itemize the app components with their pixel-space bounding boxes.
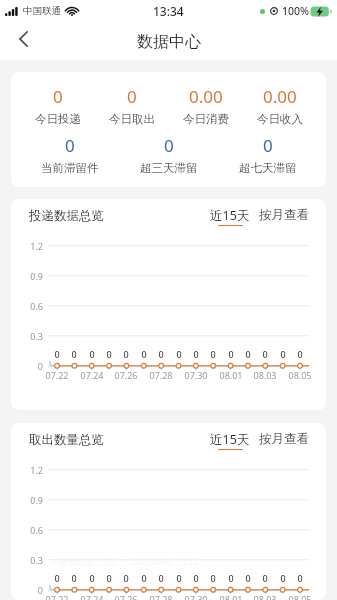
staticText: 0 [221, 572, 241, 584]
staticText: 1.2 [11, 464, 43, 476]
staticText: 0 [82, 572, 102, 584]
button[interactable]: 取出数量总览 [29, 432, 104, 448]
staticText: 0 [273, 348, 293, 360]
button[interactable]: 0 [20, 134, 119, 175]
staticText: 数据中心 [137, 32, 201, 52]
staticText: 0 [64, 572, 84, 584]
staticText: 0.9 [11, 270, 43, 282]
staticText: 0 [47, 572, 67, 584]
staticText: 投递数据总览 [29, 208, 104, 224]
staticText: 0 [203, 572, 223, 584]
button[interactable]: 按月查看 [259, 207, 309, 223]
staticText: 07.26 [112, 369, 140, 381]
staticText: 0 [134, 572, 154, 584]
staticText: 今日取出 [109, 112, 155, 126]
staticText: 按月查看 [259, 431, 309, 447]
staticText: 07.26 [112, 593, 140, 600]
staticText: 0 [263, 134, 273, 157]
button[interactable]: 近15天 [210, 207, 250, 226]
staticText: 1.2 [11, 240, 43, 252]
button[interactable]: 0 [95, 85, 169, 126]
staticText: 07.24 [78, 593, 106, 600]
staticText: 07.30 [182, 593, 210, 600]
staticText: 100% [282, 4, 309, 18]
staticText: 0 [11, 584, 43, 596]
button[interactable]: 0.00 [243, 85, 317, 126]
staticText: 08.05 [286, 369, 314, 381]
staticText: 0 [116, 348, 136, 360]
button[interactable]: 0 [119, 134, 218, 175]
staticText: 07.28 [147, 369, 175, 381]
button[interactable]: Back [9, 22, 37, 60]
staticText: 08.01 [217, 369, 245, 381]
staticText: 07.24 [78, 369, 106, 381]
staticText: 0 [290, 348, 310, 360]
staticText: 0.3 [11, 554, 43, 566]
staticText: 0.6 [11, 300, 43, 312]
staticText: 今日收入 [257, 112, 303, 126]
staticText: 13:34 [153, 3, 184, 19]
staticText: 0 [127, 85, 137, 108]
staticText: 0 [238, 572, 258, 584]
staticText: 08.03 [251, 369, 279, 381]
staticText: 0 [238, 348, 258, 360]
staticText: 08.05 [286, 593, 314, 600]
staticText: 0 [82, 348, 102, 360]
staticText: 取出数量总览 [29, 432, 104, 448]
staticText: 0 [65, 134, 75, 157]
staticText: 0 [164, 134, 174, 157]
staticText: 0 [255, 572, 275, 584]
staticText: 0 [169, 348, 189, 360]
button[interactable]: 0.00 [169, 85, 243, 126]
staticText: 0 [151, 572, 171, 584]
staticText: 08.03 [251, 593, 279, 600]
staticText: 丰巢智能柜 门店 20250805 13:34 [50, 555, 199, 567]
button[interactable]: 近15天 [210, 431, 250, 450]
staticText: 0.6 [11, 524, 43, 536]
staticText: 超七天滞留 [239, 161, 297, 175]
staticText: 中国联通 [23, 5, 61, 17]
staticText: 当前滞留件 [41, 161, 99, 175]
staticText: 07.28 [147, 593, 175, 600]
staticText: 0 [255, 348, 275, 360]
staticText: 0 [186, 348, 206, 360]
staticText: 07.30 [182, 369, 210, 381]
staticText: 今日投递 [35, 112, 81, 126]
button[interactable]: 按月查看 [259, 431, 309, 447]
button[interactable]: 0 [218, 134, 317, 175]
staticText: 0 [203, 348, 223, 360]
button[interactable]: 投递数据总览 [29, 208, 104, 224]
staticText: 0.00 [263, 85, 297, 108]
staticText: 0.00 [189, 85, 223, 108]
staticText: 0 [64, 348, 84, 360]
staticText: 0 [169, 572, 189, 584]
staticText: 0 [134, 348, 154, 360]
staticText: 0 [99, 572, 119, 584]
staticText: 超三天滞留 [140, 161, 198, 175]
staticText: 0.3 [11, 330, 43, 342]
staticText: 0 [290, 572, 310, 584]
staticText: 0 [186, 572, 206, 584]
staticText: 08.01 [217, 593, 245, 600]
staticText: 0 [99, 348, 119, 360]
staticText: 0.9 [11, 494, 43, 506]
staticText: 按月查看 [259, 207, 309, 223]
staticText: 0 [11, 360, 43, 372]
staticText: 07.22 [43, 593, 71, 600]
staticText: 0 [47, 348, 67, 360]
staticText: 0 [53, 85, 63, 108]
button[interactable]: 0 [20, 85, 95, 126]
staticText: 0 [221, 348, 241, 360]
staticText: 0 [273, 572, 293, 584]
staticText: 近15天 [210, 431, 250, 448]
staticText: 今日消费 [183, 112, 229, 126]
staticText: 0 [116, 572, 136, 584]
staticText: 0 [151, 348, 171, 360]
staticText: 07.22 [43, 369, 71, 381]
staticText: 近15天 [210, 207, 250, 224]
